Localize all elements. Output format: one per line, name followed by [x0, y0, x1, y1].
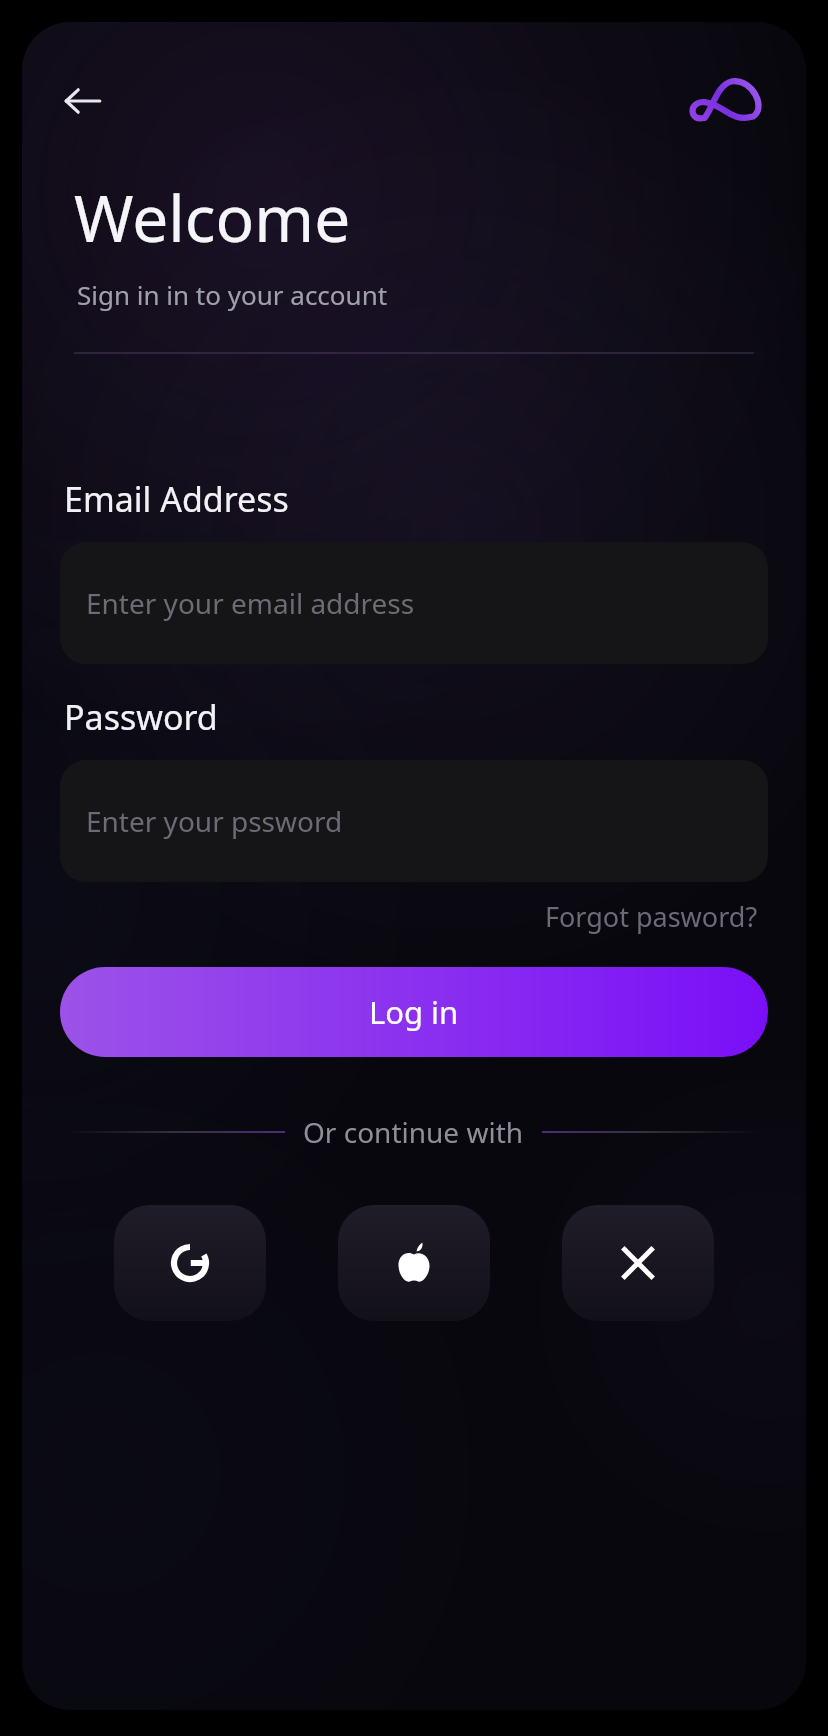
button[interactable]: Enter your pssword	[60, 760, 768, 882]
staticText: Enter your email address	[86, 584, 415, 622]
button[interactable]: Back	[52, 70, 114, 132]
button[interactable]: App logo	[674, 68, 770, 134]
staticText: Forgot pasword?	[545, 898, 758, 935]
button[interactable]: Sign in with Apple	[338, 1205, 490, 1321]
button[interactable]: Sign in with Google	[114, 1205, 266, 1321]
staticText: Log in	[369, 991, 459, 1033]
button[interactable]: Enter your email address	[60, 542, 768, 664]
staticText: Or continue with	[303, 1113, 524, 1151]
staticText: Sign in in to your account	[77, 277, 388, 312]
button[interactable]: Sign in with X	[562, 1205, 714, 1321]
staticText: Enter your pssword	[86, 802, 343, 840]
staticText: Welcome	[74, 174, 351, 261]
button[interactable]: Forgot pasword?	[537, 890, 766, 943]
staticText: Email Address	[64, 476, 289, 522]
button[interactable]: Log in	[60, 967, 768, 1057]
staticText: Password	[64, 694, 218, 740]
